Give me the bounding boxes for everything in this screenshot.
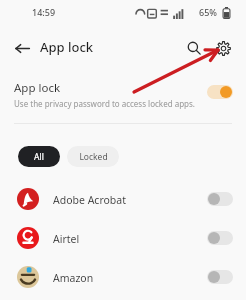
- staticText: 14:59: [32, 6, 56, 18]
- button[interactable]: Toggle off: [207, 231, 233, 245]
- button[interactable]: Toggle off: [207, 192, 233, 206]
- button[interactable]: Back: [8, 34, 36, 62]
- staticText: All: [34, 151, 44, 163]
- button[interactable]: All: [18, 146, 60, 167]
- staticText: Airtel: [53, 232, 80, 246]
- staticText: App lock: [14, 80, 61, 96]
- staticText: Use the privacy password to access locke…: [14, 98, 195, 109]
- button[interactable]: Adobe Acrobat: [0, 181, 246, 217]
- button[interactable]: Amazon: [0, 259, 246, 295]
- staticText: Amazon: [53, 271, 94, 285]
- button[interactable]: Airtel: [0, 220, 246, 256]
- button[interactable]: App lock: [0, 72, 246, 120]
- button[interactable]: Toggle on: [207, 85, 233, 99]
- button[interactable]: Settings: [209, 34, 237, 62]
- staticText: Adobe Acrobat: [53, 193, 126, 207]
- button[interactable]: Locked: [67, 146, 119, 167]
- staticText: App lock: [40, 38, 94, 56]
- staticText: Locked: [79, 151, 108, 163]
- button[interactable]: Search: [180, 34, 208, 62]
- button[interactable]: Toggle off: [207, 270, 233, 284]
- staticText: 65%: [199, 6, 217, 18]
